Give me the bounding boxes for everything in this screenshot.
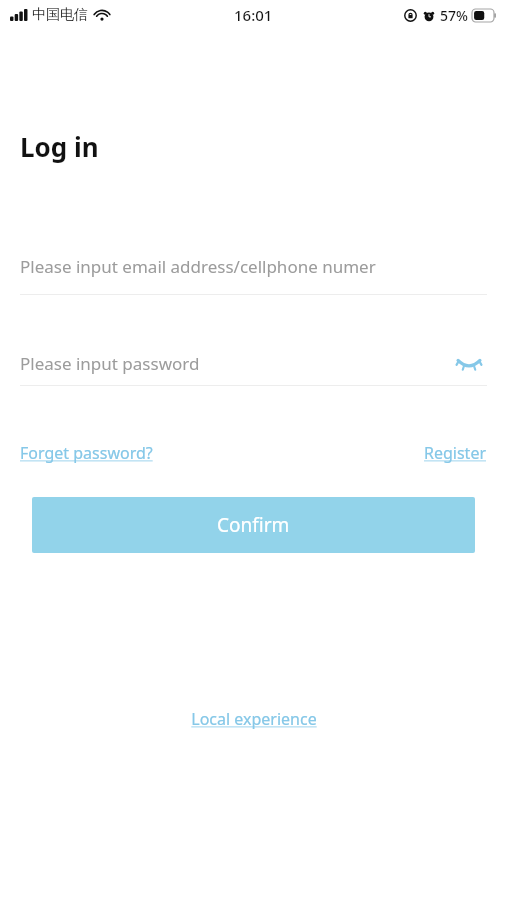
staticText: 中国电信 bbox=[32, 6, 88, 24]
staticText: Local experience bbox=[191, 708, 317, 730]
button[interactable]: Please input password bbox=[20, 346, 487, 380]
staticText: Please input password bbox=[20, 352, 200, 375]
staticText: Register bbox=[424, 442, 487, 464]
staticText: 16:01 bbox=[234, 5, 273, 25]
button[interactable]: Please input email address/cellphone num… bbox=[20, 247, 487, 285]
button[interactable]: Show password bbox=[451, 346, 487, 380]
staticText: Log in bbox=[20, 129, 99, 164]
staticText: Please input email address/cellphone num… bbox=[20, 255, 376, 278]
staticText: Confirm bbox=[217, 512, 290, 538]
staticText: 57% bbox=[440, 6, 468, 25]
staticText: Forget password? bbox=[20, 442, 153, 464]
button[interactable]: Local experience bbox=[191, 708, 317, 730]
button[interactable]: Forget password? bbox=[20, 442, 153, 464]
button[interactable]: Confirm bbox=[32, 497, 475, 553]
button[interactable]: Register bbox=[424, 442, 487, 464]
